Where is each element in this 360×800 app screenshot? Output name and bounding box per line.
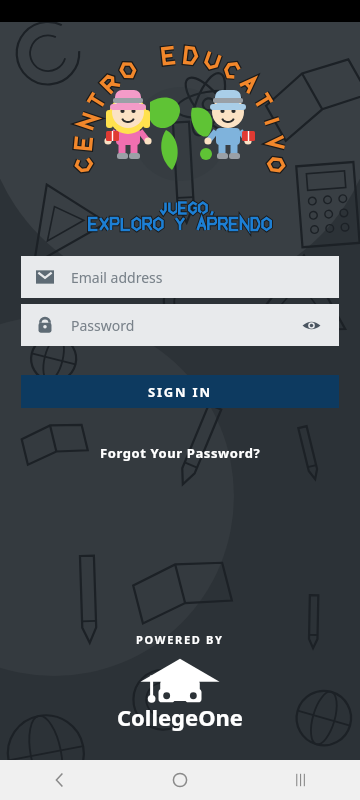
staticText: POWERED BY xyxy=(136,632,224,647)
button[interactable]: Show password xyxy=(298,312,324,338)
staticText: Forgot Your Password? xyxy=(100,444,261,462)
staticText: Email address xyxy=(71,268,163,287)
button[interactable]: Recents xyxy=(240,760,360,800)
staticText: Password xyxy=(71,316,298,335)
button[interactable]: Forgot Your Password? xyxy=(90,440,271,466)
button[interactable]: Back xyxy=(0,760,120,800)
button[interactable]: Password xyxy=(21,304,339,346)
button[interactable]: Home xyxy=(120,760,240,800)
button[interactable]: Email address xyxy=(21,256,339,298)
staticText: SIGN IN xyxy=(148,383,212,401)
staticText: CollegeOne xyxy=(117,702,243,732)
button[interactable]: SIGN IN xyxy=(21,375,339,408)
